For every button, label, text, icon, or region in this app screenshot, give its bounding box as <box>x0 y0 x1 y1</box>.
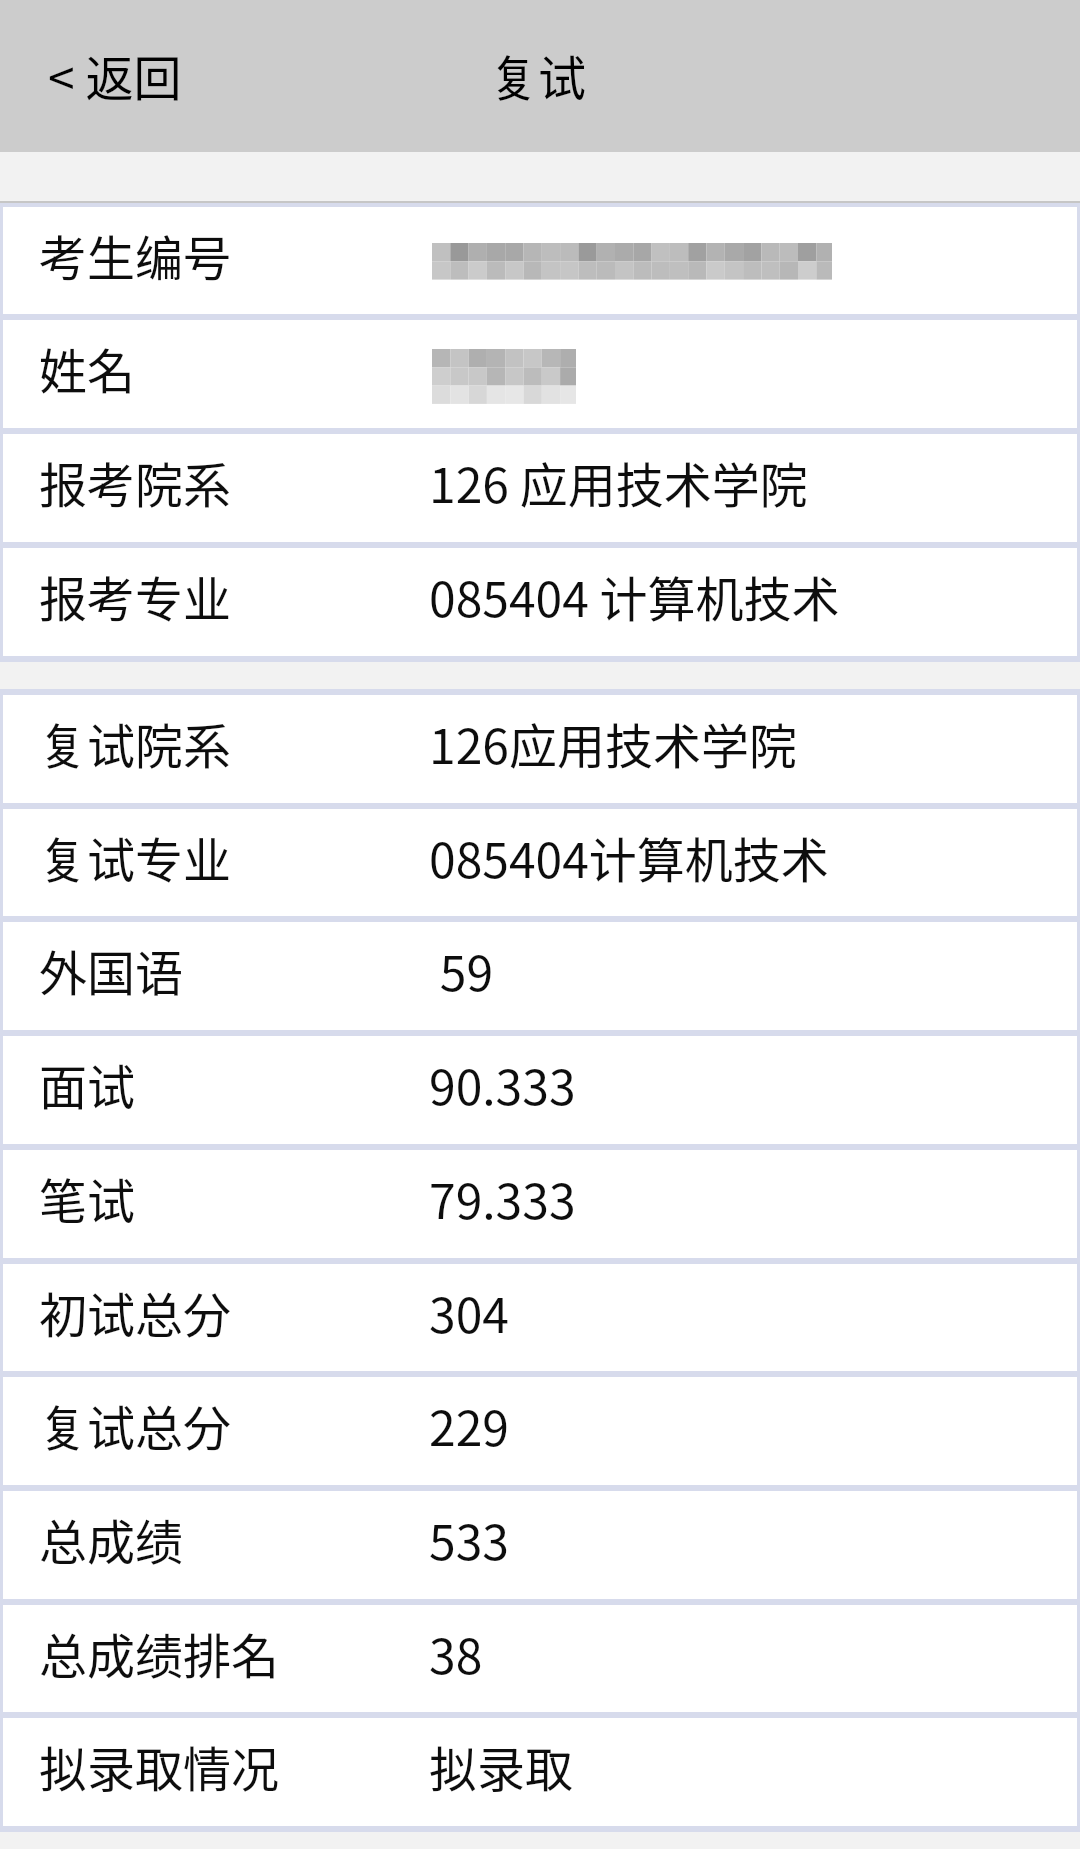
button[interactable]: 返回 <box>48 41 182 111</box>
staticText: 报考专业 <box>39 561 232 631</box>
button[interactable]: 总成绩 <box>0 1491 1080 1599</box>
button[interactable]: 复试专业 <box>0 809 1080 916</box>
staticText: 59 <box>429 935 494 1005</box>
staticText: 拟录取 <box>429 1731 574 1801</box>
button[interactable]: 考生编号 <box>0 207 1080 314</box>
button[interactable]: 总成绩排名 <box>0 1605 1080 1712</box>
staticText: 姓名 <box>39 333 136 403</box>
staticText: 初试总分 <box>39 1277 232 1347</box>
button[interactable]: 初试总分 <box>0 1264 1080 1371</box>
staticText: 复试专业 <box>39 822 232 892</box>
button[interactable]: 笔试 <box>0 1150 1080 1258</box>
staticText: 90.333 <box>429 1049 576 1119</box>
staticText: 面试 <box>39 1049 136 1119</box>
staticText: 复试 <box>490 40 587 110</box>
button[interactable]: 报考院系 <box>0 434 1080 542</box>
staticText: 考生编号 <box>39 220 232 290</box>
staticText: 外国语 <box>39 935 184 1005</box>
staticText: 总成绩排名 <box>39 1618 280 1688</box>
staticText: 复试院系 <box>39 708 232 778</box>
staticText: 总成绩 <box>39 1504 184 1574</box>
button[interactable]: 面试 <box>0 1036 1080 1144</box>
staticText: 79.333 <box>429 1163 576 1233</box>
staticText: 38 <box>429 1618 483 1688</box>
staticText: 304 <box>429 1277 509 1347</box>
button[interactable]: 姓名 <box>0 320 1080 428</box>
staticText: 报考院系 <box>39 447 232 517</box>
button[interactable]: 报考专业 <box>0 548 1080 656</box>
staticText: 229 <box>429 1390 509 1460</box>
staticText: 085404 计算机技术 <box>429 561 840 631</box>
staticText: 533 <box>429 1504 509 1574</box>
button[interactable]: 外国语 <box>0 922 1080 1030</box>
staticText: 复试总分 <box>39 1390 232 1460</box>
staticText: 126 应用技术学院 <box>429 447 808 517</box>
staticText: 126应用技术学院 <box>429 708 797 778</box>
staticText: < 返回 <box>48 40 182 110</box>
button[interactable]: 复试总分 <box>0 1377 1080 1485</box>
staticText: 笔试 <box>39 1163 136 1233</box>
staticText: 拟录取情况 <box>39 1731 280 1801</box>
staticText: 085404计算机技术 <box>429 822 829 892</box>
button[interactable]: 拟录取情况 <box>0 1718 1080 1826</box>
button[interactable]: 复试院系 <box>0 695 1080 803</box>
